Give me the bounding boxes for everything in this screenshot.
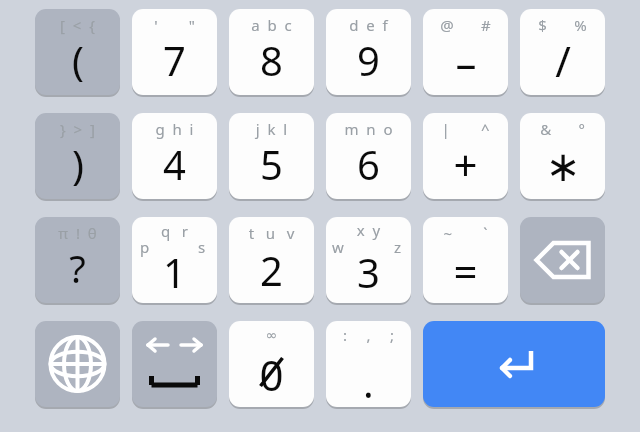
button[interactable]: plus: [423, 113, 508, 199]
button[interactable]: t u v: [229, 217, 314, 303]
staticText: ∗: [545, 142, 581, 191]
button[interactable]: g h i: [132, 113, 217, 199]
button[interactable]: minus: [423, 9, 508, 95]
staticText: a b c: [229, 15, 314, 95]
button[interactable]: x y: [326, 217, 411, 303]
staticText: } > ]: [35, 119, 120, 199]
button[interactable]: slash: [520, 9, 605, 95]
staticText: z: [394, 237, 402, 257]
button[interactable]: Change keyboard language: [35, 321, 120, 407]
staticText: ?: [69, 242, 86, 294]
staticText: 6: [357, 137, 380, 191]
button[interactable]: close parenthesis: [35, 113, 120, 199]
staticText: =: [453, 242, 478, 299]
staticText: w: [332, 237, 344, 257]
staticText: @ #: [423, 15, 508, 95]
staticText: /: [555, 32, 571, 89]
staticText: ~ `: [423, 223, 508, 303]
staticText: $ %: [520, 15, 605, 95]
staticText: .: [363, 355, 374, 407]
staticText: +: [453, 136, 478, 193]
button[interactable]: j k l: [229, 113, 314, 199]
staticText: ∞: [229, 327, 314, 407]
staticText: j k l: [229, 119, 314, 199]
staticText: d e f: [326, 15, 411, 95]
staticText: x y: [326, 220, 411, 303]
staticText: 1: [163, 245, 186, 299]
button[interactable]: Space: [132, 321, 217, 407]
staticText: 2: [260, 243, 283, 297]
staticText: g h i: [132, 119, 217, 199]
button[interactable]: ' ": [132, 9, 217, 95]
button[interactable]: question mark: [35, 217, 120, 303]
staticText: 7: [163, 33, 186, 87]
staticText: 4: [163, 137, 186, 191]
staticText: 8: [260, 33, 283, 87]
staticText: –: [455, 34, 477, 91]
staticText: π ! θ: [35, 223, 120, 303]
button[interactable]: q r: [132, 217, 217, 303]
button[interactable]: a b c: [229, 9, 314, 95]
staticText: ): [72, 137, 84, 191]
button[interactable]: Enter: [423, 321, 605, 407]
button[interactable]: equals: [423, 217, 508, 303]
staticText: s: [198, 237, 206, 257]
staticText: p: [140, 237, 150, 257]
button[interactable]: zero: [229, 321, 314, 407]
staticText: | ^: [423, 119, 508, 199]
staticText: q r: [132, 221, 217, 303]
button[interactable]: d e f: [326, 9, 411, 95]
staticText: ' ": [132, 15, 217, 95]
staticText: : , ;: [326, 325, 411, 407]
button[interactable]: m n o: [326, 113, 411, 199]
button[interactable]: open parenthesis: [35, 9, 120, 95]
staticText: 5: [260, 137, 283, 191]
staticText: [ < {: [35, 15, 120, 95]
staticText: 9: [357, 33, 380, 87]
staticText: & °: [520, 119, 605, 199]
button[interactable]: asterisk: [520, 113, 605, 199]
staticText: 0: [259, 346, 284, 403]
staticText: t u v: [229, 223, 314, 303]
staticText: m n o: [326, 119, 411, 199]
staticText: (: [72, 33, 84, 87]
staticText: 3: [357, 245, 380, 299]
button[interactable]: Backspace: [520, 217, 605, 303]
button[interactable]: period: [326, 321, 411, 407]
